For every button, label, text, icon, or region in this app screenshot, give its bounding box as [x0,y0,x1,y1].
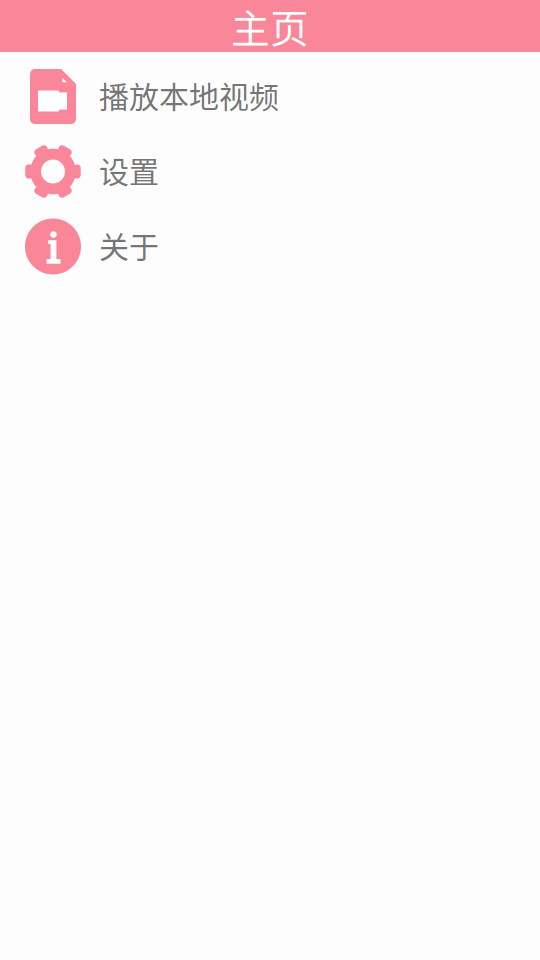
button[interactable]: 设置 [0,134,540,209]
staticText: 关于 [99,223,159,267]
staticText: 主页 [231,0,309,54]
button[interactable]: 播放本地视频 [0,59,540,134]
button[interactable]: 关于 [0,209,540,284]
staticText: 播放本地视频 [99,73,279,117]
staticText: 设置 [99,148,159,192]
